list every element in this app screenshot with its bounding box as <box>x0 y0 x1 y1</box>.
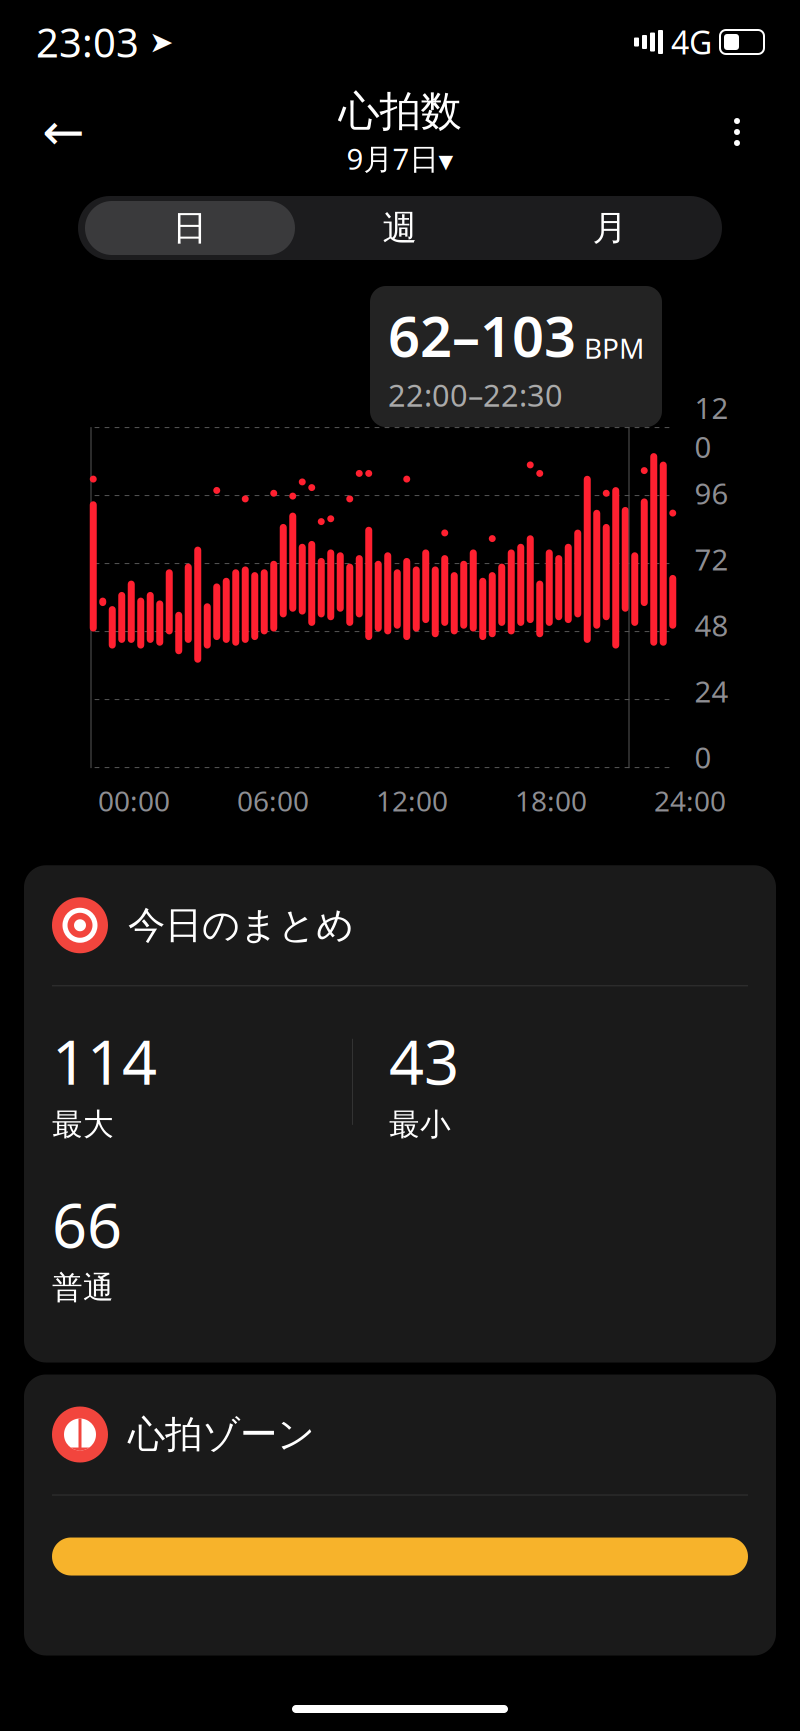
staticText: 06:00 <box>237 782 309 819</box>
button[interactable]: 月 <box>505 201 715 255</box>
staticText: ➤ <box>139 25 174 59</box>
staticText: 18:00 <box>515 782 587 819</box>
staticText: BPM <box>584 329 644 366</box>
staticText: 22:00–22:30 <box>388 374 563 415</box>
staticText: 最大 <box>52 1106 114 1143</box>
staticText: 23:03 <box>36 15 139 68</box>
staticText: 月 <box>592 207 627 249</box>
button[interactable]: More options <box>702 97 772 167</box>
staticText: 心拍数 <box>338 86 461 137</box>
staticText: 48 <box>694 606 728 645</box>
button[interactable]: Back <box>28 97 98 167</box>
staticText: 96 <box>694 474 728 513</box>
staticText: 普通 <box>52 1269 114 1306</box>
staticText: 24 <box>694 672 728 711</box>
staticText: 12:00 <box>376 782 448 819</box>
staticText: 72 <box>694 540 728 579</box>
staticText: 43 <box>389 1020 459 1102</box>
staticText: 日 <box>172 207 207 249</box>
staticText: 62–103 <box>388 298 576 372</box>
staticText: 心拍ゾーン <box>128 1412 315 1457</box>
button[interactable]: 週 <box>295 201 505 255</box>
staticText: 00:00 <box>98 782 170 819</box>
staticText: 120 <box>694 388 728 466</box>
staticText: 114 <box>52 1020 157 1102</box>
staticText: 66 <box>52 1183 122 1265</box>
staticText: 4G <box>671 21 712 63</box>
staticText: 週 <box>382 207 417 249</box>
staticText: 24:00 <box>654 782 726 819</box>
staticText: 今日のまとめ <box>128 902 354 948</box>
button[interactable]: 日 <box>85 201 295 255</box>
button[interactable]: 9月7日▾ <box>346 139 453 178</box>
staticText: 9月7日▾ <box>346 139 453 178</box>
staticText: 0 <box>694 738 711 777</box>
staticText: ← <box>42 103 84 161</box>
staticText: 最小 <box>389 1106 451 1143</box>
